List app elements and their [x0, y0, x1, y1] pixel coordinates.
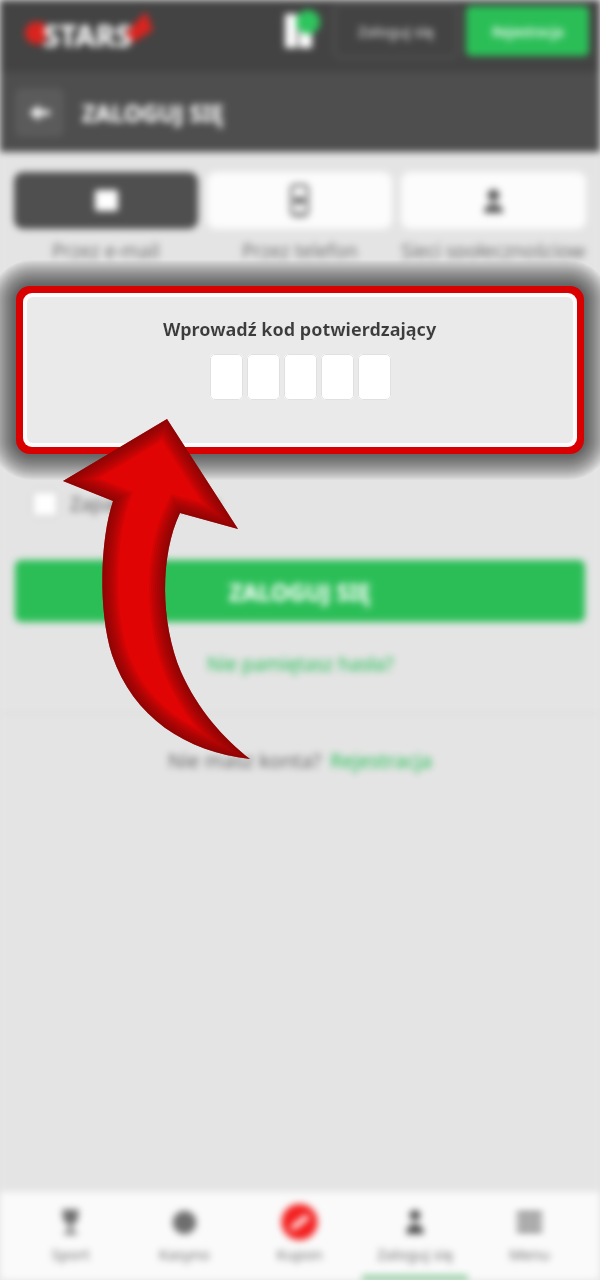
staticText: Wprowadź kod potwierdzający	[163, 318, 437, 343]
button[interactable]	[14, 172, 198, 229]
staticText: Zaloguj się	[358, 21, 434, 41]
button[interactable]: Zaloguj się	[334, 4, 458, 58]
staticText: STARS	[43, 15, 132, 56]
button[interactable]: Zapamiętaj mnie	[32, 491, 58, 517]
staticText: Menu	[509, 1244, 550, 1264]
button[interactable]: Rejestracja	[466, 6, 589, 56]
button[interactable]: ZALOGUJ SIĘ	[15, 560, 585, 622]
button[interactable]	[321, 354, 354, 400]
staticText: Nie pamiętasz hasła?	[207, 651, 394, 677]
button[interactable]	[284, 354, 317, 400]
button[interactable]: Menu	[472, 1192, 587, 1280]
button[interactable]: Zaloguj się	[357, 1192, 472, 1280]
button[interactable]: Kasyno	[127, 1192, 242, 1280]
staticText: Kupon	[276, 1244, 323, 1264]
staticText: Wprowadź kod potwierdzający	[163, 317, 437, 342]
button[interactable]	[207, 172, 392, 229]
staticText: ZALOGUJ SIĘ	[82, 97, 224, 128]
staticText: Sport	[51, 1244, 90, 1264]
staticText: Przez e-mail	[52, 238, 160, 258]
button[interactable]: Wstecz	[15, 88, 64, 137]
staticText: Rejestracja	[492, 22, 564, 41]
button[interactable]	[247, 354, 280, 400]
staticText: Przez telefon	[242, 238, 358, 258]
staticText: ZALOGUJ SIĘ	[229, 576, 371, 607]
staticText: Zaloguj się	[377, 1244, 453, 1264]
staticText: Nie masz konta?	[168, 747, 322, 774]
button[interactable]	[401, 172, 586, 229]
staticText: Sieci społecznościowe	[401, 238, 586, 258]
button[interactable]: Wprowadź kod potwierdzający	[27, 297, 573, 443]
button[interactable]: Promocje	[271, 0, 327, 62]
button[interactable]: Sport	[13, 1192, 127, 1280]
staticText: Zapamiętaj mnie	[70, 491, 220, 517]
button[interactable]	[358, 354, 391, 400]
staticText: Rejestracja	[330, 747, 433, 774]
staticText: Kasyno	[159, 1244, 210, 1264]
button[interactable]	[210, 354, 243, 400]
button[interactable]: Kupon	[242, 1192, 357, 1280]
